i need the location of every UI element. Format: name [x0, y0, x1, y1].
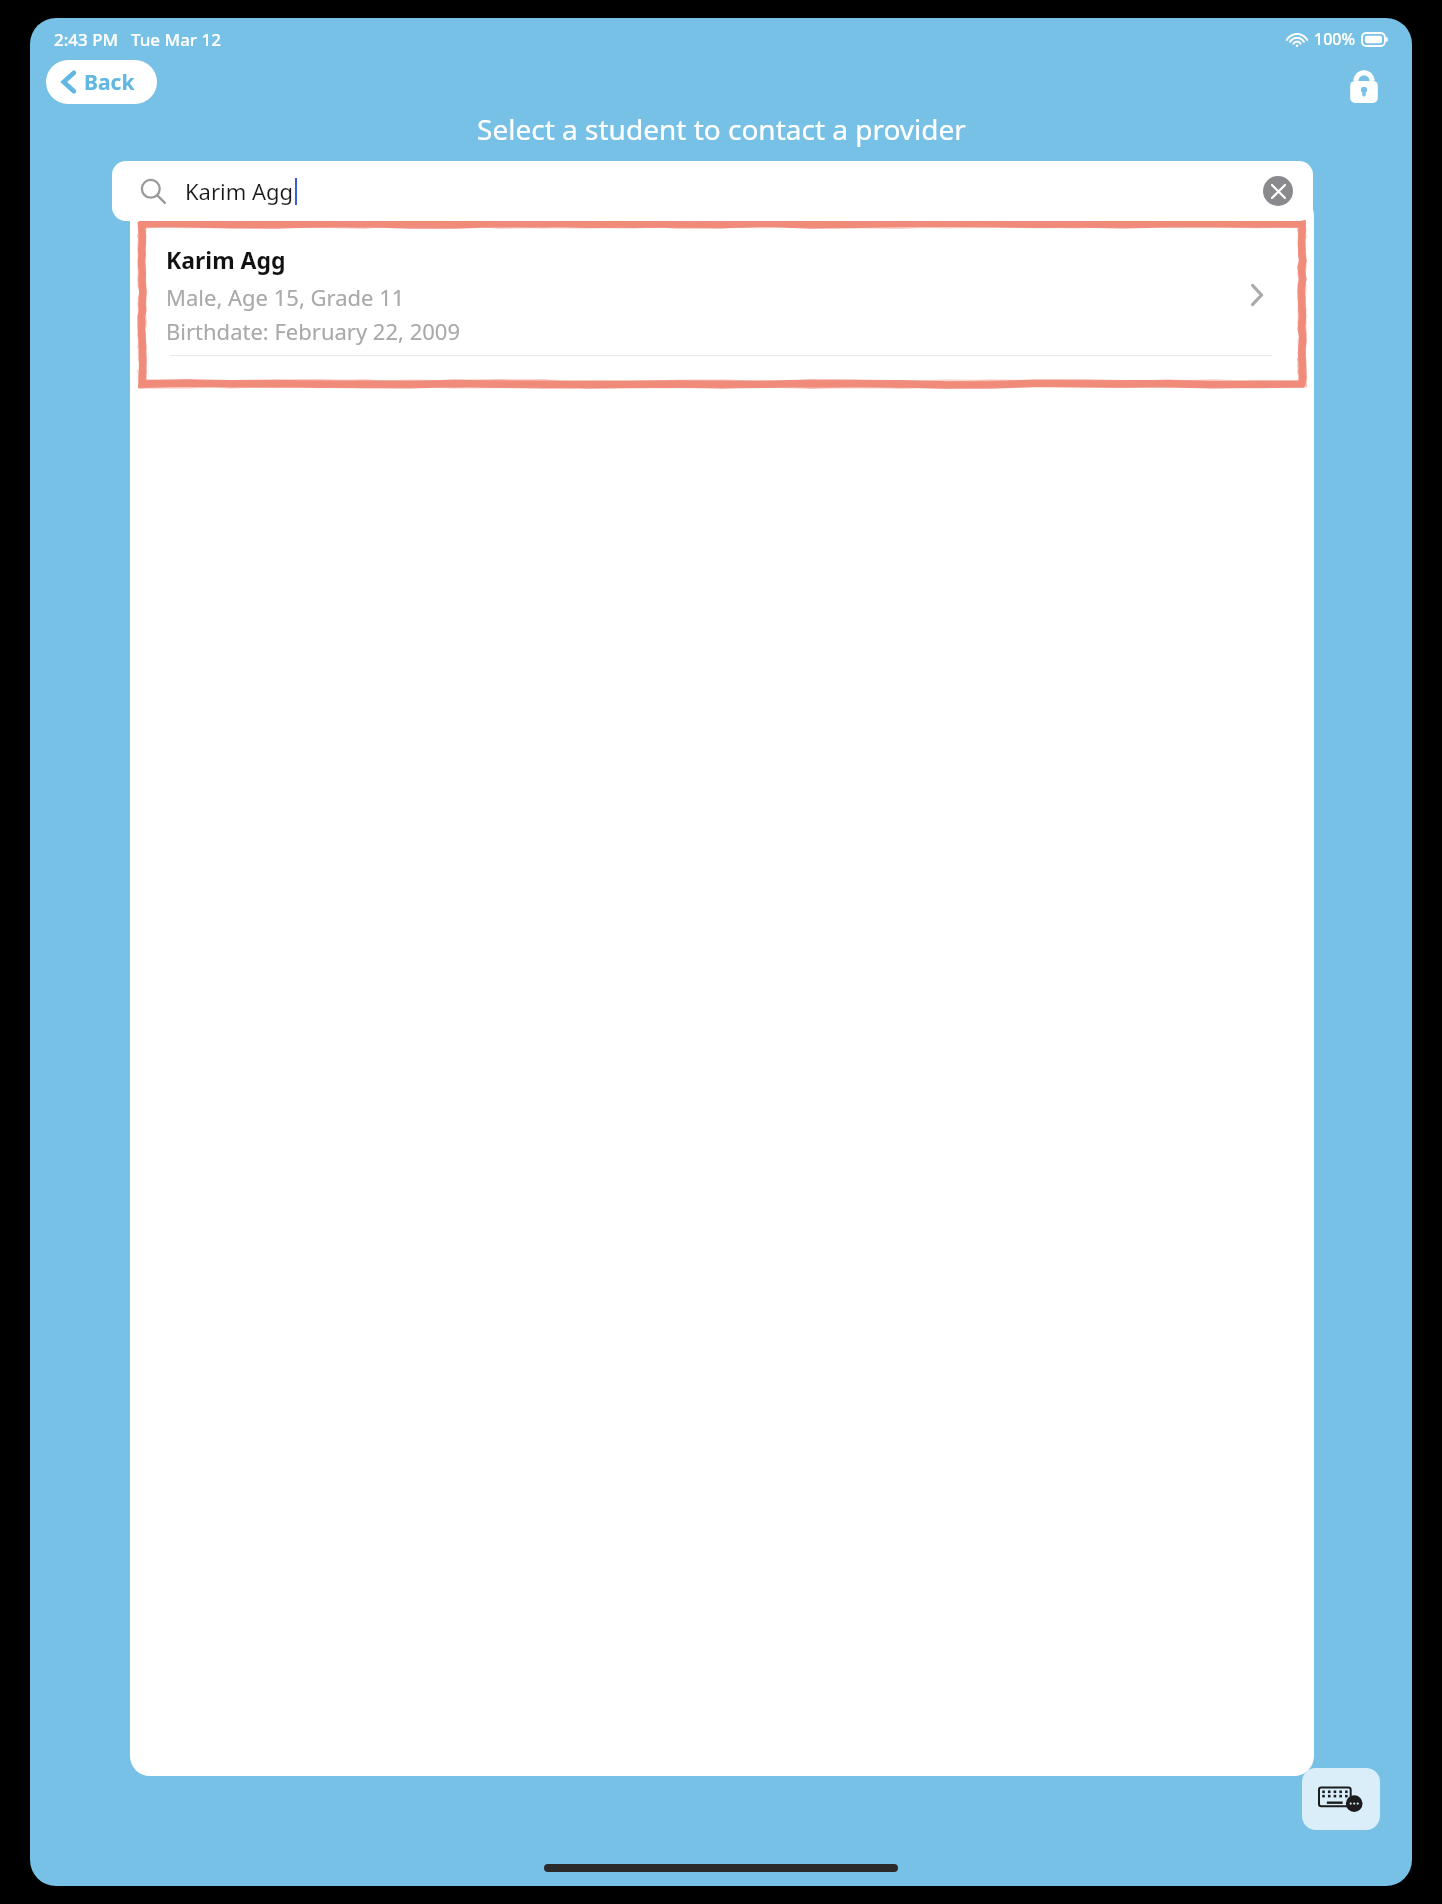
staticText: Birthdate: February 22, 2009 — [166, 316, 460, 346]
staticText: 100% — [1314, 28, 1356, 50]
staticText: Karim Agg — [166, 244, 286, 275]
staticText: Back — [84, 68, 135, 97]
staticText: Tue Mar 12 — [131, 28, 221, 51]
button[interactable]: Back — [46, 60, 157, 104]
button[interactable]: Clear search — [1263, 176, 1293, 206]
button[interactable]: Keyboard options — [1302, 1768, 1380, 1830]
staticText: Select a student to contact a provider — [477, 110, 966, 148]
button[interactable]: Karim Agg — [154, 224, 1290, 384]
button[interactable]: Lock — [1340, 60, 1388, 108]
button[interactable]: Karim Agg — [112, 161, 1313, 221]
staticText: 2:43 PM — [54, 28, 119, 51]
staticText: Male, Age 15, Grade 11 — [166, 282, 405, 312]
staticText: Karim Agg — [185, 176, 294, 206]
